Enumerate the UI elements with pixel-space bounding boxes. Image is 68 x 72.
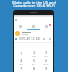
button[interactable]: Menu [14,17,53,23]
button[interactable]: 5 [28,58,40,66]
button[interactable]: 8 [28,66,40,72]
staticText: JKL [32,63,36,66]
button[interactable]: (070-40 12 34) [14,36,53,42]
button[interactable]: 6 [40,58,52,66]
button[interactable]: 7 [15,66,27,72]
staticText: ABC [32,55,37,58]
staticText: 3 [45,50,48,55]
staticText: 9 [45,66,48,71]
staticText: DEF [44,55,48,58]
button[interactable]: Voicemail [40,23,53,30]
button[interactable] [14,30,53,36]
staticText: 5 [33,58,36,63]
staticText: 1 [20,51,23,56]
button[interactable]: 4 [15,58,27,66]
button[interactable]: 3 [40,49,52,58]
staticText: Make calls to the US and [12,0,56,5]
button[interactable]: 9 [40,66,52,72]
staticText: 2 [33,50,36,55]
button[interactable]: Contacts [27,23,40,30]
staticText: GHI [19,63,23,66]
button[interactable]: Recents [14,23,27,30]
staticText: 6 [45,58,48,63]
staticText: (070-40 12 34) [19,37,41,41]
staticText: 4 [20,58,23,63]
button[interactable]: 2 [28,49,40,58]
staticText: Canada over 3G & Wi-Fi [13,3,55,8]
staticText: MNO [43,63,49,66]
staticText: 8 [33,66,36,71]
staticText: 7 [20,66,23,71]
button[interactable]: 1 [15,49,27,58]
